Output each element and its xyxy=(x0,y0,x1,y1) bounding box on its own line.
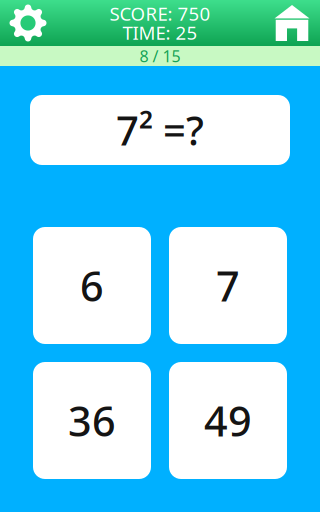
staticText: 36 xyxy=(68,393,116,448)
staticText: SCORE: 750 xyxy=(109,1,210,26)
staticText: 6 xyxy=(80,258,104,313)
button[interactable]: Settings xyxy=(0,0,56,46)
button[interactable]: 6 xyxy=(33,227,151,344)
staticText: 49 xyxy=(204,393,252,448)
button[interactable]: 7 xyxy=(169,227,287,344)
staticText: TIME: 25 xyxy=(122,20,197,45)
staticText: 8 / 15 xyxy=(139,45,180,67)
button[interactable]: Home xyxy=(264,0,320,46)
button[interactable]: 49 xyxy=(169,362,287,479)
staticText: 7² =? xyxy=(116,103,204,156)
button[interactable]: 36 xyxy=(33,362,151,479)
staticText: 7 xyxy=(216,258,240,313)
